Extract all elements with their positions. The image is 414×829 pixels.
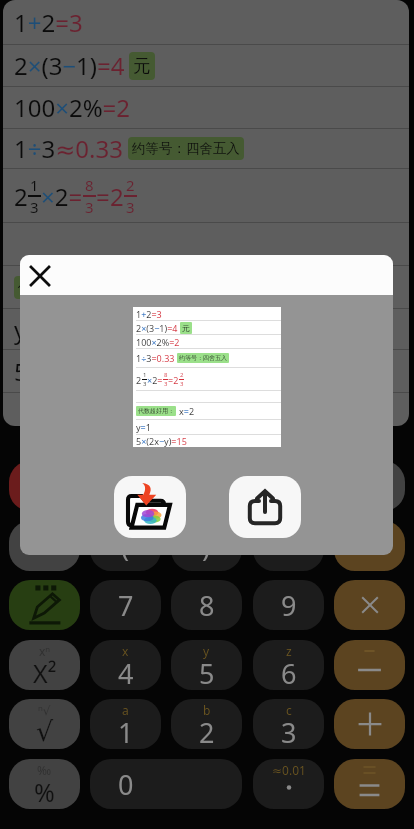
staticText: =2 bbox=[168, 374, 179, 386]
staticText: a bbox=[122, 702, 129, 718]
staticText: 3 bbox=[85, 197, 94, 217]
staticText: ‰ bbox=[37, 762, 52, 778]
staticText: 3 bbox=[30, 197, 39, 217]
staticText: ( bbox=[121, 528, 130, 565]
button[interactable]: AC bbox=[9, 461, 80, 511]
staticText: 代数超好用： bbox=[138, 407, 174, 415]
button[interactable]: 代数超好用： bbox=[3, 266, 409, 308]
staticText: 2 bbox=[180, 371, 184, 379]
staticText: 4 bbox=[118, 655, 134, 690]
button[interactable]: 6 bbox=[253, 640, 324, 690]
staticText: ≈0.01 bbox=[272, 762, 306, 778]
staticText: z bbox=[286, 643, 292, 659]
button[interactable] bbox=[3, 223, 409, 265]
staticText: 5 bbox=[199, 655, 215, 690]
button[interactable]: 1+2=3 bbox=[3, 0, 409, 44]
staticText: y=1 bbox=[136, 421, 151, 433]
button[interactable]: ( bbox=[90, 521, 161, 571]
button[interactable]: 4 bbox=[90, 640, 161, 690]
staticText: 代数超好用： bbox=[18, 279, 99, 296]
staticText: y bbox=[203, 643, 210, 659]
button[interactable]: Handwriting bbox=[253, 759, 324, 809]
button[interactable]: Handwriting bbox=[334, 521, 405, 571]
staticText: 2 bbox=[14, 180, 28, 213]
staticText: 6 bbox=[281, 655, 297, 690]
button[interactable]: 2 bbox=[171, 699, 242, 749]
staticText: 0 bbox=[118, 766, 134, 803]
staticText: X² bbox=[33, 656, 57, 690]
button[interactable]: % bbox=[9, 759, 80, 809]
staticText: x=2 bbox=[109, 271, 150, 304]
button[interactable]: ) bbox=[171, 521, 242, 571]
staticText: % bbox=[34, 775, 55, 809]
button[interactable]: 5 bbox=[171, 640, 242, 690]
button[interactable]: Share bbox=[229, 476, 301, 538]
staticText: x=2 bbox=[179, 405, 195, 417]
staticText: y=1 bbox=[14, 313, 54, 346]
staticText: √ bbox=[36, 716, 54, 747]
staticText: 1 bbox=[118, 714, 134, 749]
staticText: xⁿ bbox=[39, 643, 51, 659]
staticText: 元 bbox=[133, 55, 151, 77]
staticText: 2 bbox=[110, 180, 124, 213]
button[interactable]: ( bbox=[90, 461, 161, 511]
staticText: = bbox=[96, 180, 110, 213]
staticText: 约等号：四舍五入 bbox=[132, 140, 240, 157]
button[interactable]: 2 bbox=[3, 169, 409, 222]
staticText: 1 bbox=[30, 175, 39, 195]
button[interactable]: Close bbox=[23, 259, 56, 292]
staticText: 1+2=3 bbox=[136, 308, 162, 320]
button[interactable]: Handwriting bbox=[9, 521, 80, 571]
staticText: 3 bbox=[180, 380, 184, 388]
button[interactable]: 5×(2x−y)=15 bbox=[3, 350, 409, 392]
button[interactable]: 100×2%=2 bbox=[3, 87, 409, 128]
button[interactable]: 1 bbox=[90, 699, 161, 749]
button[interactable]: X² bbox=[9, 640, 80, 690]
staticText: 3 bbox=[143, 380, 147, 388]
staticText: 5×(2x−y)=15 bbox=[14, 355, 150, 388]
staticText: 100×2%=2 bbox=[136, 336, 180, 348]
staticText: 2 bbox=[199, 714, 215, 749]
staticText: ( bbox=[121, 468, 130, 505]
button[interactable]: 2×(3−1)=4 bbox=[3, 45, 409, 86]
staticText: ×2= bbox=[41, 180, 83, 213]
staticText: 2 bbox=[126, 175, 135, 195]
button[interactable]: Handwriting bbox=[334, 580, 405, 630]
staticText: ⁿ√ bbox=[38, 702, 51, 718]
staticText: 8 bbox=[199, 587, 215, 624]
button[interactable]: Handwriting bbox=[90, 759, 242, 809]
staticText: 5×(2x−y)=15 bbox=[136, 435, 187, 447]
button[interactable]: 1÷3≈0.33 bbox=[3, 129, 409, 168]
staticText: 1÷3≈0.33 bbox=[14, 132, 123, 165]
button[interactable]: 9 bbox=[253, 580, 324, 630]
staticText: 8 bbox=[164, 371, 168, 379]
button[interactable]: √ bbox=[9, 699, 80, 749]
staticText: 3 bbox=[164, 380, 168, 388]
button[interactable]: Handwriting bbox=[334, 461, 405, 511]
staticText: 1 bbox=[143, 371, 147, 379]
button[interactable]: 7 bbox=[90, 580, 161, 630]
button[interactable]: 3 bbox=[253, 699, 324, 749]
button[interactable]: Save to Photos bbox=[114, 476, 186, 538]
button[interactable]: Handwriting bbox=[334, 699, 405, 749]
button[interactable]: 8 bbox=[171, 580, 242, 630]
staticText: 3 bbox=[281, 714, 297, 749]
staticText: ) bbox=[202, 528, 211, 565]
staticText: 1÷3=0.33 bbox=[136, 352, 175, 364]
staticText: 3 bbox=[126, 197, 135, 217]
staticText: 元 bbox=[182, 323, 190, 333]
staticText: b bbox=[203, 702, 211, 718]
button[interactable]: Handwriting bbox=[253, 521, 324, 571]
staticText: 约等号：四舍五入 bbox=[179, 354, 227, 362]
staticText: 8 bbox=[85, 175, 94, 195]
button[interactable]: Handwriting bbox=[334, 640, 405, 690]
staticText: 7 bbox=[118, 587, 134, 624]
button[interactable]: Handwriting bbox=[334, 759, 405, 809]
button[interactable]: y=1 bbox=[3, 309, 409, 349]
staticText: ×2= bbox=[147, 374, 163, 386]
button[interactable]: Handwriting bbox=[9, 580, 80, 630]
button[interactable]: Handwriting bbox=[253, 461, 324, 511]
button[interactable]: ) bbox=[171, 461, 242, 511]
staticText: 1+2=3 bbox=[14, 6, 83, 39]
